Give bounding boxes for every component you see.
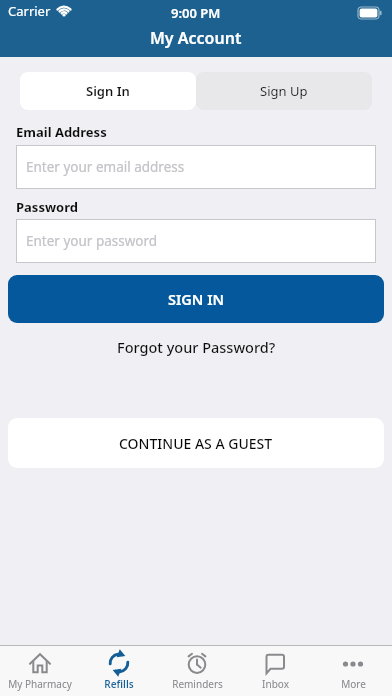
button[interactable]: Forgot your Password?	[0, 336, 392, 358]
staticText: Forgot your Password?	[117, 337, 276, 357]
staticText: My Account	[150, 27, 242, 49]
button[interactable]: My Pharmacy	[0, 646, 79, 696]
staticText: Enter your email address	[26, 158, 185, 176]
staticText: Inbox	[262, 677, 289, 691]
button[interactable]: Enter your password	[16, 219, 376, 263]
staticText: CONTINUE AS A GUEST	[119, 434, 273, 453]
button[interactable]: More	[314, 646, 392, 696]
staticText: Email Address	[16, 123, 107, 141]
staticText: 9:00 PM	[171, 4, 221, 22]
staticText: Sign Up	[260, 82, 308, 100]
staticText: More	[341, 677, 366, 691]
button[interactable]: Sign In	[20, 72, 196, 110]
staticText: Carrier	[8, 2, 51, 20]
staticText: Password	[16, 198, 78, 216]
staticText: My Pharmacy	[8, 677, 72, 691]
button[interactable]: CONTINUE AS A GUEST	[8, 418, 384, 468]
button[interactable]: Refills	[79, 646, 158, 696]
staticText: Refills	[104, 677, 134, 691]
staticText: Enter your password	[26, 232, 158, 250]
button[interactable]: Enter your email address	[16, 145, 376, 189]
staticText: Sign In	[86, 82, 130, 100]
button[interactable]: Inbox	[236, 646, 314, 696]
button[interactable]: Sign Up	[196, 72, 372, 110]
staticText: Reminders	[172, 677, 223, 691]
button[interactable]: SIGN IN	[8, 275, 384, 323]
button[interactable]: Reminders	[158, 646, 236, 696]
staticText: SIGN IN	[168, 289, 224, 309]
